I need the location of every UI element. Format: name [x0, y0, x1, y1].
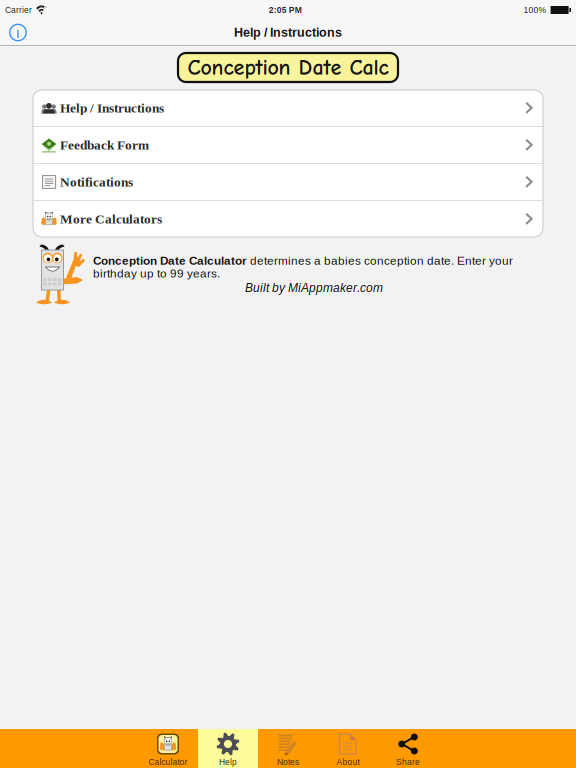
staticText: Built by MiAppmaker.com — [245, 281, 383, 294]
button[interactable]: Feedback Form — [33, 127, 543, 163]
staticText: Carrier — [5, 5, 32, 15]
button[interactable]: Info — [0, 20, 36, 45]
button[interactable]: Conception Date Calc — [178, 53, 398, 82]
staticText: Help / Instructions — [234, 25, 342, 39]
staticText: Help — [219, 757, 237, 767]
button[interactable]: Calculator — [138, 729, 198, 768]
button[interactable]: Help / Instructions — [33, 90, 543, 126]
staticText: Help / Instructions — [60, 101, 164, 115]
staticText: 2:05 PM — [269, 5, 302, 15]
staticText: Calculator — [148, 757, 187, 767]
staticText: Feedback Form — [60, 138, 149, 152]
staticText: Notifications — [60, 175, 133, 189]
staticText: Conception Date Calculator determines a … — [93, 254, 513, 280]
staticText: 100% — [524, 5, 547, 15]
staticText: Share — [396, 757, 420, 767]
button[interactable]: Help — [198, 729, 258, 768]
button[interactable]: About — [318, 729, 378, 768]
button[interactable]: Share — [378, 729, 438, 768]
staticText: Conception Date Calc — [187, 55, 388, 80]
staticText: More Calculators — [60, 212, 162, 226]
button[interactable]: More Calculators — [33, 201, 543, 237]
button[interactable]: Notes — [258, 729, 318, 768]
button[interactable]: Notifications — [33, 164, 543, 200]
staticText: Notes — [277, 757, 299, 767]
staticText: About — [336, 757, 359, 767]
